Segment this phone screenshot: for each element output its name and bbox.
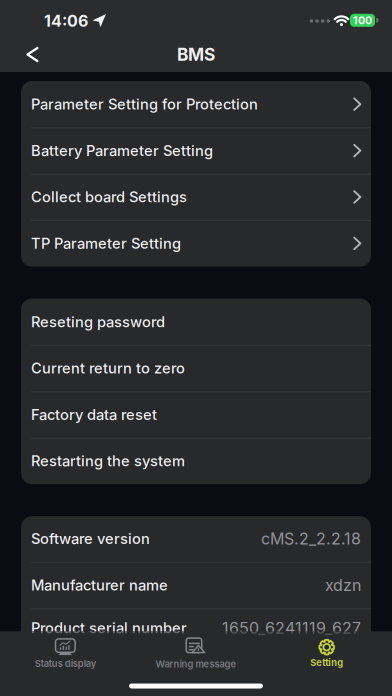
staticText: Software version — [31, 530, 150, 547]
staticText: Restarting the system — [31, 452, 185, 470]
staticText: Status display — [35, 658, 96, 669]
staticText: xdzn — [325, 576, 361, 595]
staticText: Manufacturer name — [31, 576, 168, 594]
staticText: Collect board Settings — [31, 188, 187, 206]
staticText: TP Parameter Setting — [31, 235, 181, 252]
button[interactable]: Status display — [1, 626, 129, 678]
staticText: Battery Parameter Setting — [31, 142, 213, 159]
staticText: 1650_6241119_627 — [222, 619, 361, 637]
staticText: BMS — [177, 44, 215, 65]
staticText: Product serial number — [31, 619, 187, 636]
staticText: Factory data reset — [31, 406, 157, 423]
staticText: 14:06 — [44, 12, 88, 30]
staticText: 100 — [353, 14, 372, 27]
staticText: Parameter Setting for Protection — [31, 95, 258, 113]
button[interactable]: Parameter Setting for Protection — [31, 81, 361, 127]
button[interactable]: TP Parameter Setting — [31, 220, 361, 267]
button[interactable]: Back — [11, 38, 55, 71]
staticText: Setting — [310, 657, 343, 668]
staticText: Warning message — [155, 658, 236, 669]
button[interactable]: Current return to zero — [31, 345, 361, 391]
button[interactable]: Reseting password — [31, 299, 361, 345]
staticText: cMS.2_2.2.18 — [261, 529, 361, 548]
button[interactable]: Warning message — [132, 626, 260, 678]
staticText: Product serial number — [31, 619, 187, 637]
staticText: Current return to zero — [31, 359, 185, 377]
button[interactable]: Battery Parameter Setting — [31, 127, 361, 174]
staticText: Reseting password — [31, 313, 165, 330]
button[interactable]: Factory data reset — [31, 391, 361, 438]
staticText: 1650_6241119_627 — [222, 618, 361, 637]
button[interactable]: Setting — [263, 626, 391, 678]
button[interactable]: Restarting the system — [31, 438, 361, 484]
button[interactable]: Collect board Settings — [31, 174, 361, 220]
